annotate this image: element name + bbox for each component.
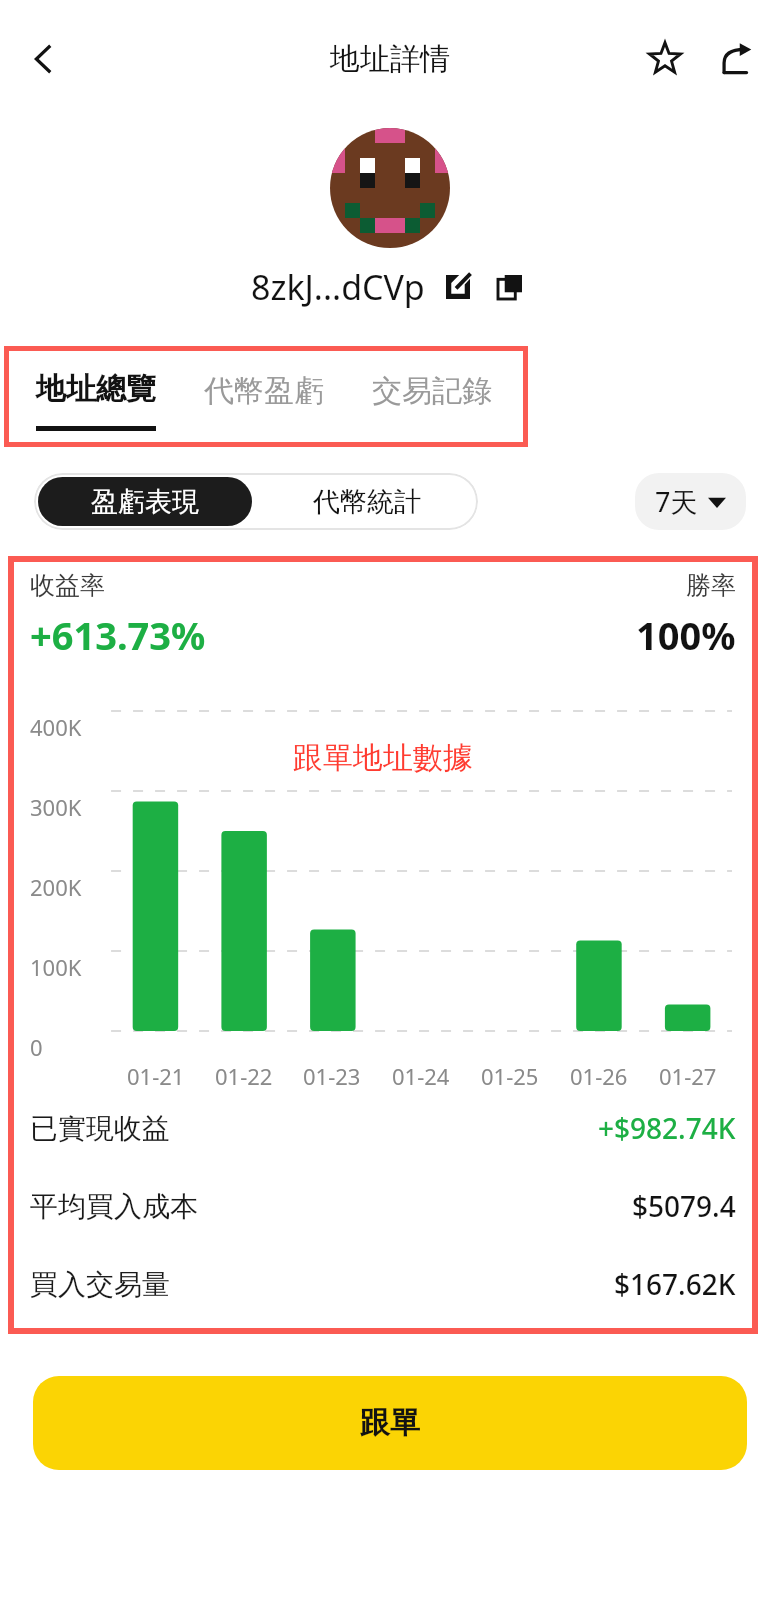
button[interactable]: 平均買入成本 — [30, 1187, 736, 1225]
staticText: 100% — [636, 609, 736, 661]
staticText: 0 — [30, 1032, 43, 1062]
staticText: 代幣統計 — [313, 485, 421, 519]
button[interactable]: 盈虧表現 — [38, 477, 252, 526]
staticText: 7天 — [655, 483, 698, 520]
staticText: 平均買入成本 — [30, 1189, 198, 1224]
button[interactable]: Copy address — [491, 268, 529, 306]
button[interactable]: 交易記錄 — [372, 346, 492, 447]
staticText: 代幣盈虧 — [204, 372, 324, 410]
staticText: +613.73% — [30, 609, 206, 661]
staticText: 01-27 — [659, 1061, 717, 1091]
staticText: $5079.4 — [632, 1187, 736, 1225]
staticText: 01-22 — [215, 1061, 273, 1091]
button[interactable]: Back — [14, 29, 74, 89]
staticText: 交易記錄 — [372, 372, 492, 410]
button[interactable]: 已實現收益 — [30, 1109, 736, 1147]
staticText: 跟單 — [360, 1404, 420, 1442]
staticText: 地址總覽 — [36, 370, 156, 408]
staticText: 200K — [30, 872, 82, 902]
button[interactable]: 代幣盈虧 — [204, 346, 324, 447]
button[interactable]: Edit note — [439, 268, 477, 306]
button[interactable]: 跟單 — [33, 1376, 747, 1470]
staticText: 跟單地址數據 — [293, 739, 473, 777]
staticText: 300K — [30, 792, 82, 822]
button[interactable]: 地址總覽 — [36, 346, 156, 447]
staticText: 400K — [30, 712, 82, 742]
button[interactable]: 7天 — [635, 473, 746, 530]
staticText: 01-21 — [127, 1061, 185, 1091]
staticText: 01-26 — [570, 1061, 628, 1091]
staticText: 01-25 — [481, 1061, 539, 1091]
staticText: 100K — [30, 952, 82, 982]
staticText: 01-24 — [392, 1061, 450, 1091]
button[interactable]: 買入交易量 — [30, 1265, 736, 1303]
staticText: 勝率 — [686, 570, 736, 601]
staticText: 買入交易量 — [30, 1267, 170, 1302]
staticText: 收益率 — [30, 570, 105, 601]
staticText: +$982.74K — [598, 1109, 736, 1147]
staticText: 地址詳情 — [330, 40, 450, 78]
button[interactable]: 代幣統計 — [256, 473, 478, 530]
staticText: 8zkJ...dCVp — [251, 264, 425, 310]
button[interactable]: Share — [708, 30, 766, 88]
staticText: 盈虧表現 — [91, 485, 199, 519]
staticText: $167.62K — [614, 1265, 736, 1303]
staticText: 01-23 — [303, 1061, 361, 1091]
staticText: 已實現收益 — [30, 1111, 170, 1146]
button[interactable]: Favorite — [636, 30, 694, 88]
